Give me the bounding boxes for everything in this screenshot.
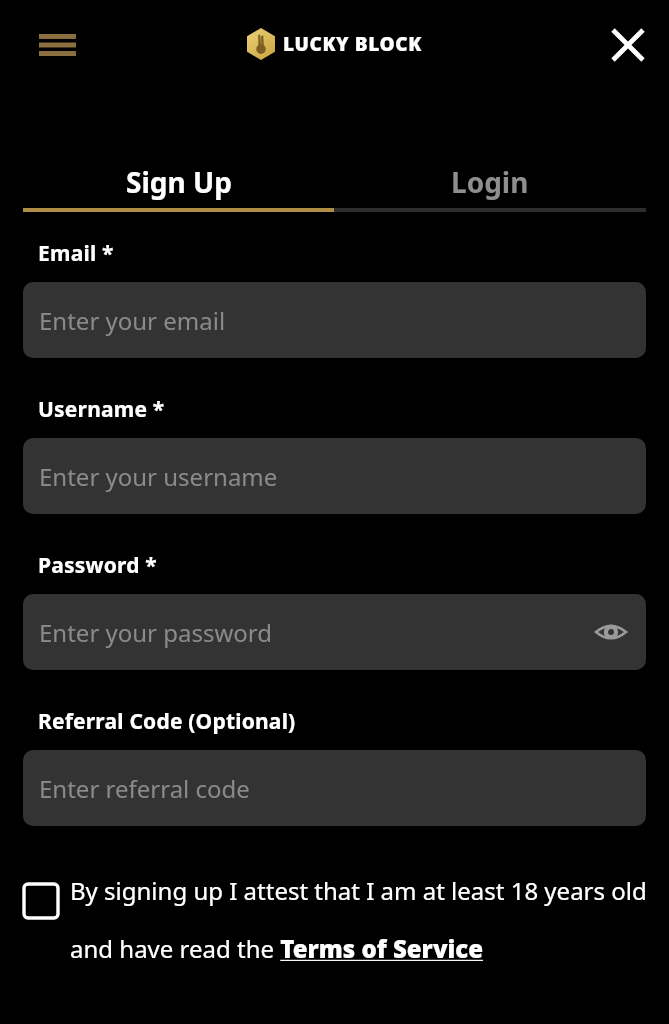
button[interactable]: By signing up I attest that I am at leas…: [24, 874, 659, 965]
staticText: Enter your username: [39, 460, 278, 493]
staticText: By signing up I attest that I am at leas…: [70, 874, 659, 965]
button[interactable]: Show password: [590, 611, 632, 653]
staticText: Referral Code (Optional): [38, 707, 296, 736]
staticText: Email *: [38, 239, 114, 268]
button[interactable]: Enter your username: [23, 438, 646, 514]
button[interactable]: Close: [600, 17, 656, 73]
staticText: Enter referral code: [39, 772, 250, 805]
button[interactable]: Sign Up: [23, 156, 334, 208]
button[interactable]: Menu: [26, 19, 88, 71]
staticText: LUCKY BLOCK: [283, 31, 422, 57]
staticText: Sign Up: [126, 163, 232, 201]
staticText: Login: [451, 163, 529, 201]
staticText: Password *: [38, 551, 157, 580]
button[interactable]: Enter your email: [23, 282, 646, 358]
staticText: Username *: [38, 395, 165, 424]
button[interactable]: Enter referral code: [23, 750, 646, 826]
button[interactable]: Enter your password: [23, 594, 646, 670]
button[interactable]: Login: [334, 156, 646, 208]
staticText: Enter your email: [39, 304, 226, 337]
staticText: Enter your password: [39, 616, 273, 649]
